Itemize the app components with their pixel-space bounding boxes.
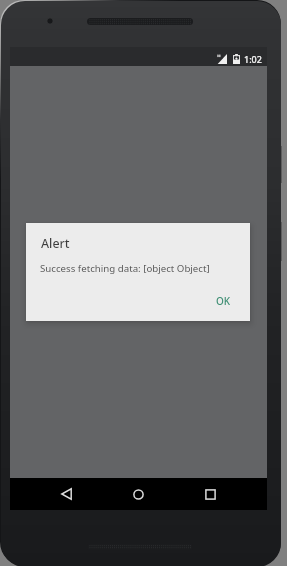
staticText: OK [216,294,231,308]
button[interactable]: Recent apps [180,478,241,510]
staticText: Success fetching data: [object Object] [40,262,210,275]
button[interactable]: Home [97,478,180,510]
button[interactable]: OK [197,288,250,314]
staticText: 1:02 [244,53,262,65]
staticText: Alert [41,235,70,252]
button[interactable]: Back [36,478,97,510]
